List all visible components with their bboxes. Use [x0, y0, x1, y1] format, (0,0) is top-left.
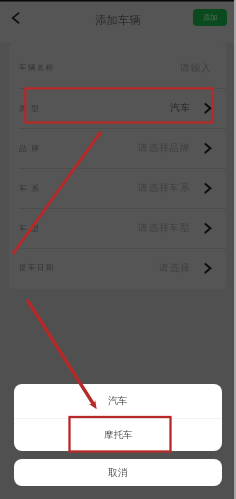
- staticText: 汽车: [170, 102, 191, 114]
- staticText: 车 型: [19, 223, 41, 233]
- staticText: 添加车辆: [95, 13, 141, 27]
- staticText: 取消: [108, 467, 128, 479]
- staticText: 类 型: [19, 103, 41, 113]
- button[interactable]: 类 型: [9, 88, 226, 128]
- staticText: 请选择车系: [138, 182, 191, 194]
- staticText: 品 牌: [19, 143, 41, 153]
- button[interactable]: Back: [0, 3, 30, 33]
- button[interactable]: 添加: [193, 9, 227, 26]
- staticText: 请选择车型: [138, 222, 191, 234]
- button[interactable]: 车 型: [9, 208, 226, 248]
- button[interactable]: 提车日期: [9, 248, 226, 288]
- staticText: 请输入: [180, 62, 212, 74]
- staticText: 请选择品牌: [138, 142, 191, 154]
- staticText: 摩托车: [104, 429, 133, 441]
- button[interactable]: 汽车: [14, 384, 222, 418]
- staticText: 车辆名称: [19, 63, 55, 73]
- staticText: 请选择: [159, 262, 191, 274]
- staticText: 添加: [203, 13, 218, 22]
- button[interactable]: 品 牌: [9, 128, 226, 168]
- button[interactable]: 摩托车: [14, 419, 222, 451]
- staticText: 提车日期: [19, 263, 55, 273]
- button[interactable]: 取消: [14, 459, 222, 486]
- button[interactable]: 车 系: [9, 168, 226, 208]
- button[interactable]: 车辆名称: [9, 48, 226, 88]
- staticText: 汽车: [108, 395, 128, 407]
- staticText: 车 系: [19, 183, 41, 193]
